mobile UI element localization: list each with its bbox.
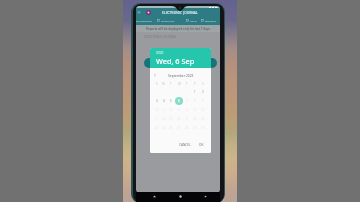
button[interactable]: Previous month [153,73,157,77]
button[interactable]: 5 [167,97,175,105]
staticText: F [194,82,196,86]
button[interactable]: Home [178,194,183,199]
button[interactable]: Back [152,194,157,199]
staticText: REPORTS [205,19,217,22]
staticText: DASHBOARD [136,19,152,22]
staticText: S [202,82,204,86]
button[interactable]: 2 [199,88,207,96]
button[interactable]: Recent apps [203,194,208,199]
staticText: ACCOUNTS [161,19,175,22]
button[interactable]: DASHBOARD [136,16,152,25]
staticText: ELECTRONIC JOURNAL [144,35,177,39]
staticText: OK [199,143,204,147]
button[interactable]: 4 [160,97,167,105]
button[interactable]: OK [198,143,205,147]
staticText: LOAN [190,19,197,22]
button[interactable]: 1 [191,88,199,96]
staticText: ELECTRONIC JOURNAL [162,11,198,15]
staticText: 3 [156,99,158,103]
button[interactable]: ACCOUNTS [157,16,175,25]
staticText: T [170,82,172,86]
staticText: 2023 [156,51,164,55]
staticText: 2 [202,90,204,94]
staticText: Reports will be displayed only for last … [146,27,211,31]
button[interactable]: CANCEL [178,143,192,147]
button[interactable]: 3 [153,97,160,105]
button[interactable]: LOAN [186,16,197,25]
button[interactable]: Open navigation menu [137,10,141,14]
staticText: 5 [170,99,172,103]
staticText: Wed, 6 Sep [156,56,195,66]
button[interactable]: REPORTS [201,16,217,25]
staticText: 28 [185,126,189,130]
staticText: 1 [194,90,196,94]
staticText: T [186,82,188,86]
staticText: 4 [163,99,165,103]
staticText: CANCEL [179,143,191,147]
staticText: September 2023 [168,73,194,77]
staticText: 6 [178,99,180,103]
staticText: M [162,82,165,86]
button[interactable]: 6 [175,97,183,105]
staticText: S [156,82,158,86]
staticText: W [178,82,181,86]
